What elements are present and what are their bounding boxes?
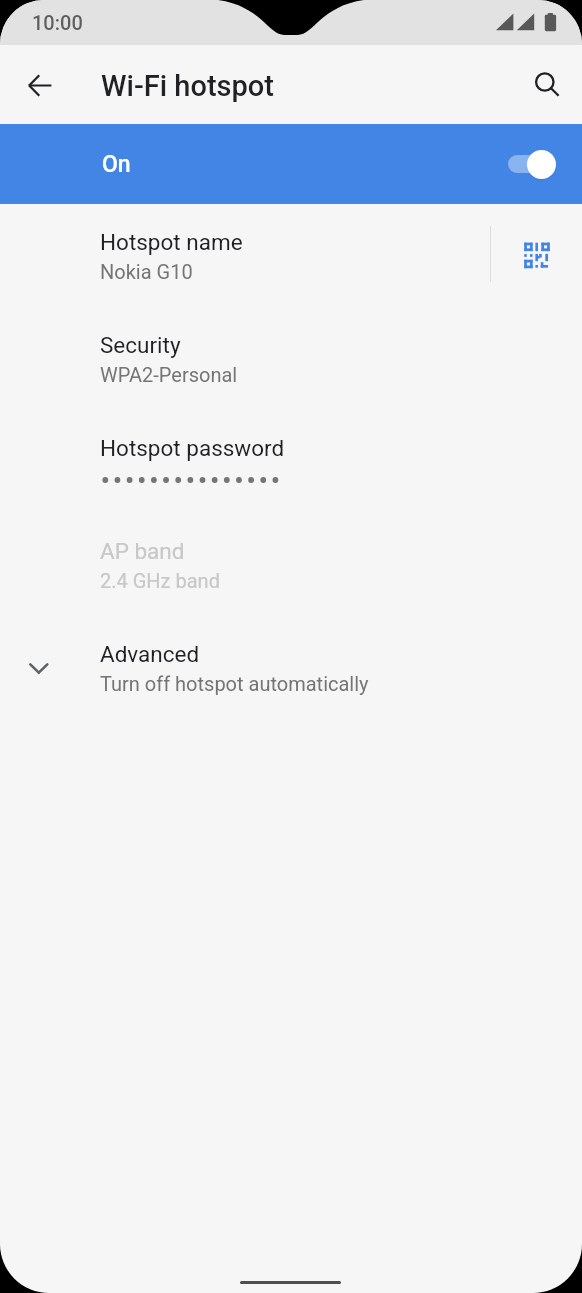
staticText: Turn off hotspot automatically — [100, 672, 369, 695]
button[interactable] — [0, 413, 582, 516]
button[interactable] — [0, 207, 582, 310]
staticText: Security — [100, 332, 181, 358]
staticText: Hotspot password — [100, 435, 285, 461]
staticText: Advanced — [100, 641, 200, 667]
button[interactable] — [0, 516, 582, 619]
staticText: WPA2-Personal — [100, 363, 238, 386]
button[interactable] — [0, 310, 582, 413]
button[interactable]: Search — [521, 59, 573, 111]
staticText: Nokia G10 — [100, 260, 193, 283]
button[interactable]: Share hotspot QR code — [507, 225, 567, 285]
staticText: AP band — [100, 538, 185, 564]
button[interactable]: Advanced — [0, 619, 582, 722]
button[interactable]: Navigate up — [14, 59, 66, 111]
other: Hotspot on — [502, 144, 562, 184]
staticText: Wi-Fi hotspot — [101, 69, 274, 103]
staticText: 10:00 — [32, 11, 83, 34]
button[interactable]: On — [0, 124, 582, 204]
staticText: 2.4 GHz band — [100, 569, 220, 592]
staticText: Hotspot name — [100, 229, 243, 255]
staticText: On — [102, 151, 131, 178]
